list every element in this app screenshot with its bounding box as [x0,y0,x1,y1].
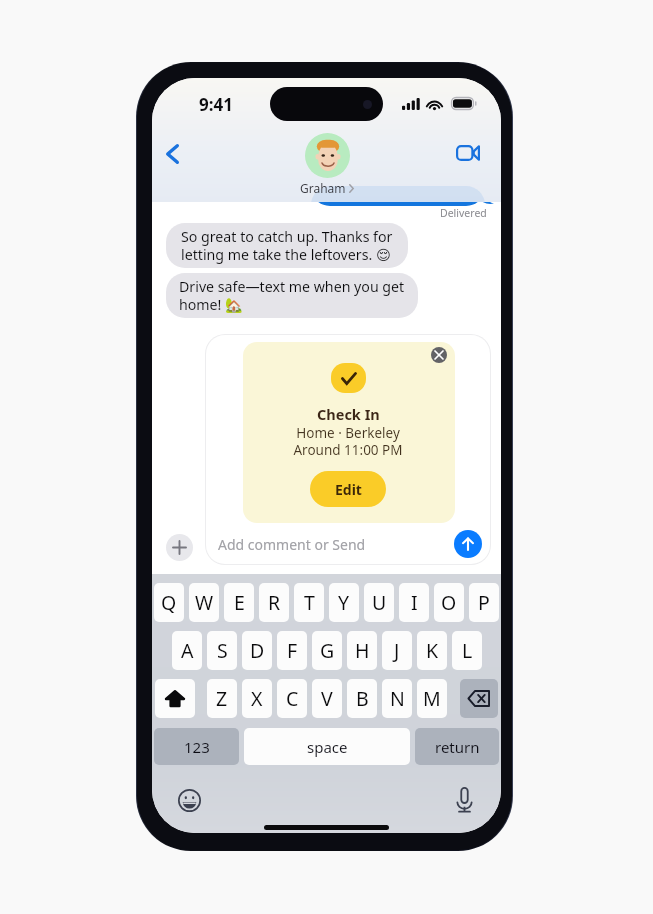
staticText: Graham [300,180,346,196]
staticText: I [411,589,418,616]
button[interactable]: V [312,679,342,718]
button[interactable]: R [259,583,289,622]
button[interactable]: B [347,679,377,718]
staticText: L [462,637,473,664]
staticText: F [287,637,298,664]
button[interactable]: O [434,583,464,622]
button[interactable]: Send [454,530,482,558]
button[interactable]: Add attachment [166,534,193,561]
staticText: Q [161,589,177,616]
staticText: V [321,685,333,712]
button[interactable]: I [399,583,429,622]
staticText: return [435,737,480,757]
button[interactable]: space [244,728,410,765]
button[interactable]: T [294,583,324,622]
staticText: K [426,637,439,664]
button[interactable]: H [347,631,377,670]
staticText: Check In [317,404,380,424]
button[interactable]: FaceTime video call [450,135,486,171]
button[interactable]: W [189,583,219,622]
staticText: G [320,637,335,664]
staticText: M [423,685,441,712]
staticText: Z [216,685,228,712]
button[interactable]: C [277,679,307,718]
staticText: Add comment or Send [218,535,366,554]
staticText: So great to catch up. Thanks for letting… [181,227,393,265]
button[interactable]: Dictation [448,784,480,816]
staticText: S [217,637,228,664]
button[interactable]: Q [154,583,184,622]
staticText: W [195,589,214,616]
button[interactable]: S [207,631,237,670]
staticText: O [441,589,457,616]
staticText: H [355,637,370,664]
staticText: P [478,589,490,616]
button[interactable]: Shift [155,679,195,718]
button[interactable]: Edit [310,471,386,507]
button[interactable]: Z [207,679,237,718]
staticText: Delivered [440,206,487,220]
staticText: D [250,637,265,664]
staticText: 9:41 [199,93,233,116]
button[interactable]: Close [431,347,447,363]
button[interactable]: U [364,583,394,622]
button[interactable]: return [415,728,499,765]
staticText: Y [338,589,350,616]
staticText: A [181,637,194,664]
button[interactable]: Delete [460,679,498,718]
staticText: Edit [335,480,362,499]
button[interactable]: M [417,679,447,718]
button[interactable]: Back [154,136,190,172]
button[interactable]: F [277,631,307,670]
staticText: X [251,685,263,712]
button[interactable]: 123 [154,728,239,765]
staticText: Drive safe—text me when you get home! 🏡 [179,277,405,314]
button[interactable]: Y [329,583,359,622]
button[interactable]: L [452,631,482,670]
staticText: B [356,685,369,712]
button[interactable]: Graham [300,133,354,196]
button[interactable]: A [172,631,202,670]
staticText: 123 [184,737,210,757]
button[interactable]: D [242,631,272,670]
staticText: Home · Berkeley Around 11:00 PM [293,424,403,459]
staticText: space [307,737,348,757]
button[interactable]: G [312,631,342,670]
staticText: J [394,637,400,664]
button[interactable]: P [469,583,499,622]
staticText: T [304,589,315,616]
staticText: C [286,685,299,712]
staticText: U [372,589,387,616]
button[interactable]: J [382,631,412,670]
staticText: N [390,685,405,712]
staticText: E [234,589,245,616]
button[interactable]: Emoji keyboard [173,784,205,816]
staticText: R [268,589,281,616]
button[interactable]: X [242,679,272,718]
button[interactable]: K [417,631,447,670]
button[interactable]: E [224,583,254,622]
button[interactable]: N [382,679,412,718]
